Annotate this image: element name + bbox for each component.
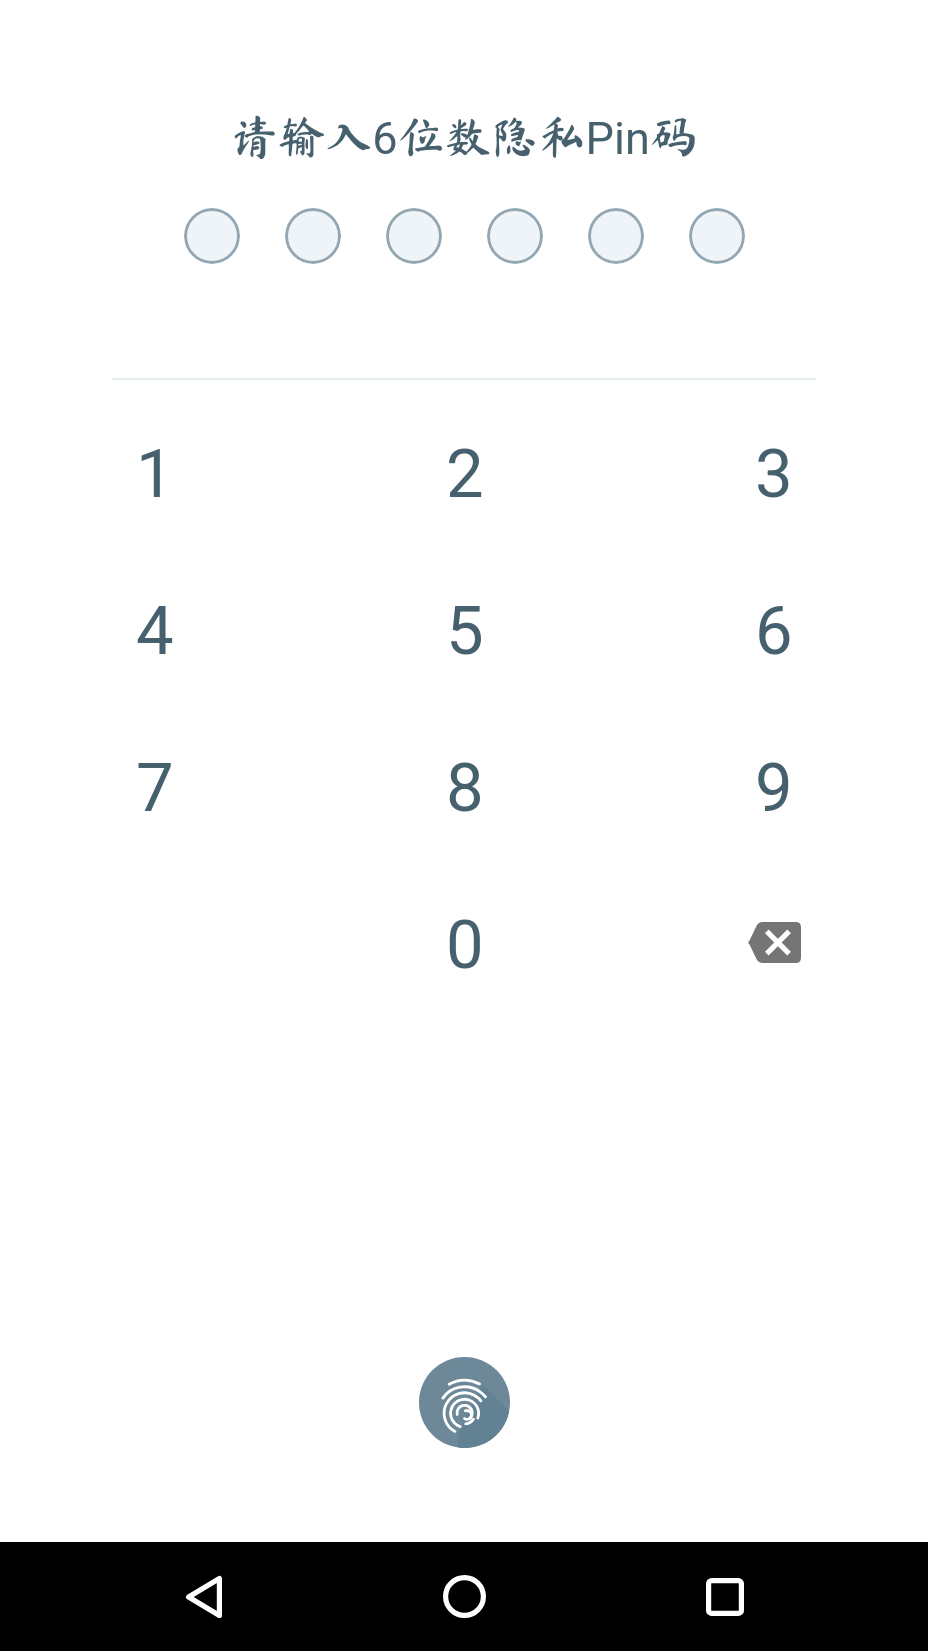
- other: Delete: [747, 922, 801, 963]
- staticText: 0: [446, 906, 484, 985]
- button[interactable]: 7: [0, 710, 310, 867]
- staticText: 8: [446, 749, 484, 828]
- button[interactable]: 8: [310, 710, 619, 867]
- button[interactable]: Home: [409, 1542, 519, 1651]
- staticText: 9: [755, 749, 793, 828]
- button[interactable]: 9: [619, 710, 928, 867]
- button[interactable]: 6: [619, 553, 928, 710]
- staticText: 4: [136, 592, 174, 671]
- button[interactable]: Unlock with fingerprint: [419, 1357, 510, 1448]
- button[interactable]: 4: [0, 553, 310, 710]
- button[interactable]: Recent apps: [670, 1542, 780, 1651]
- staticText: 3: [755, 435, 793, 514]
- button[interactable]: Back: [148, 1542, 258, 1651]
- staticText: 请输入6位数隐私Pin码: [231, 112, 697, 165]
- button[interactable]: 3: [619, 396, 928, 553]
- button[interactable]: Delete: [619, 867, 928, 1024]
- staticText: 1: [136, 435, 174, 514]
- button[interactable]: 2: [310, 396, 619, 553]
- staticText: 2: [446, 435, 484, 514]
- staticText: 7: [136, 749, 174, 828]
- button[interactable]: 5: [310, 553, 619, 710]
- button[interactable]: 0: [310, 867, 619, 1024]
- staticText: 6: [755, 592, 793, 671]
- staticText: 5: [446, 592, 484, 671]
- button[interactable]: 1: [0, 396, 310, 553]
